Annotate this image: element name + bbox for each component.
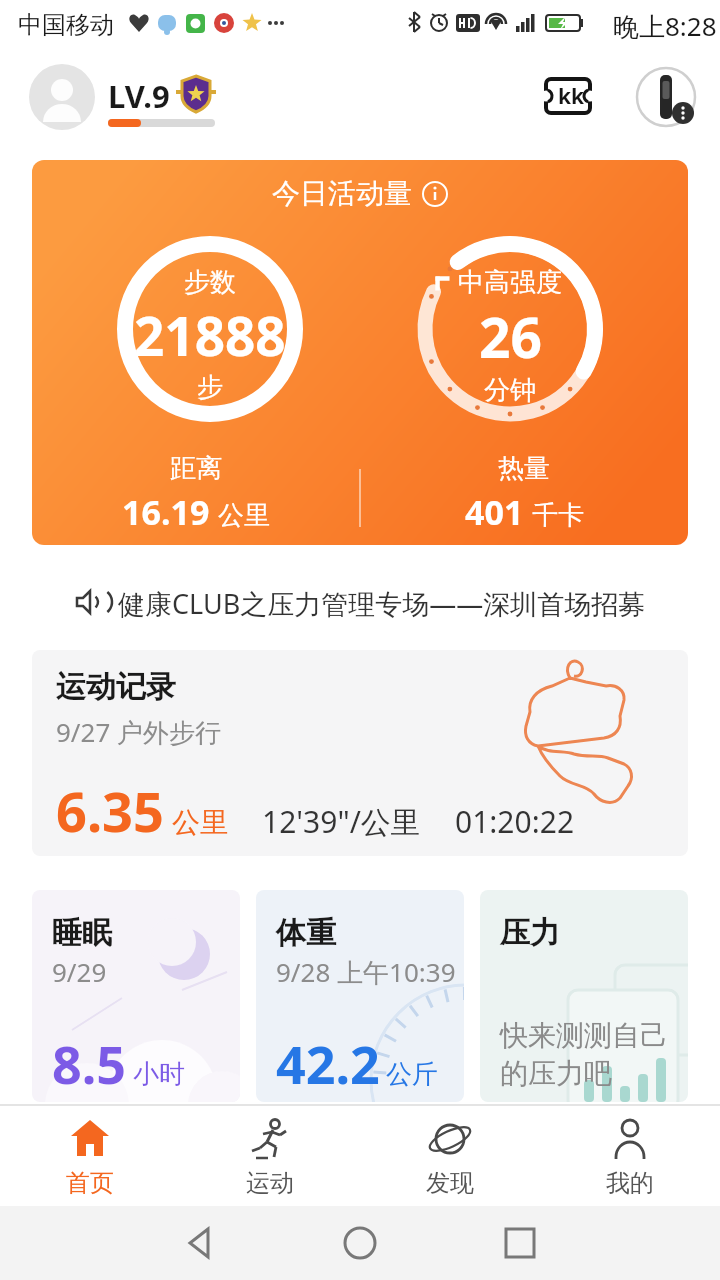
staticText: 公里 (172, 805, 228, 840)
staticText: 42.2 (276, 1028, 380, 1099)
staticText: 我的 (606, 1168, 654, 1198)
staticText: 21888 (134, 299, 286, 371)
staticText: 9/29 (52, 954, 107, 989)
staticText: LV.9 (108, 75, 170, 117)
button[interactable]: 今日活动量 (32, 160, 688, 545)
staticText: 01:20:22 (455, 801, 575, 842)
staticText: 6.35 (56, 774, 164, 848)
staticText: 9/27 户外步行 (56, 714, 222, 750)
button[interactable]: kk (540, 73, 596, 119)
button[interactable]: 压力 (480, 890, 688, 1102)
staticText: 小时 (133, 1058, 185, 1091)
staticText: 睡眠 (52, 914, 112, 952)
button[interactable] (635, 66, 697, 128)
staticText: 发现 (426, 1168, 474, 1198)
button[interactable] (163, 1206, 237, 1280)
staticText: 401 (465, 489, 524, 535)
staticText: 千卡 (532, 499, 584, 532)
staticText: 首页 (66, 1168, 114, 1198)
button[interactable]: 运动 (180, 1106, 360, 1206)
button[interactable] (323, 1206, 397, 1280)
button[interactable]: 睡眠 (32, 890, 240, 1102)
staticText: 中国移动 (18, 10, 114, 40)
staticText: 快来测测自己 的压力吧 (500, 1018, 668, 1092)
staticText: 晚上8:28 (613, 8, 717, 44)
staticText: 压力 (500, 914, 560, 952)
staticText: 12'39"/公里 (262, 801, 421, 842)
staticText: 26 (479, 299, 542, 374)
button[interactable] (483, 1206, 557, 1280)
button[interactable] (29, 64, 95, 130)
button[interactable]: 体重 (256, 890, 464, 1102)
staticText: 分钟 (484, 374, 536, 407)
staticText: 今日活动量 (272, 176, 412, 211)
button[interactable]: 我的 (540, 1106, 720, 1206)
staticText: 运动记录 (56, 668, 176, 706)
staticText: 体重 (276, 914, 336, 952)
button[interactable]: 发现 (360, 1106, 540, 1206)
button[interactable]: 首页 (0, 1106, 180, 1206)
button[interactable]: 运动记录 (32, 650, 688, 856)
staticText: kk (558, 82, 585, 111)
staticText: 9/28 上午10:39 (276, 954, 456, 990)
staticText: 中高强度 (458, 266, 562, 299)
staticText: 8.5 (52, 1028, 127, 1099)
button[interactable]: 健康CLUB之压力管理专场——深圳首场招募 (0, 583, 720, 623)
staticText: 步数 (184, 266, 236, 299)
staticText: 距离 (170, 452, 222, 485)
staticText: 公里 (218, 499, 270, 532)
staticText: 健康CLUB之压力管理专场——深圳首场招募 (118, 585, 646, 622)
staticText: 步 (197, 371, 223, 404)
staticText: 16.19 (122, 489, 210, 535)
staticText: 运动 (246, 1168, 294, 1198)
staticText: 热量 (498, 452, 550, 485)
staticText: 公斤 (386, 1058, 438, 1091)
